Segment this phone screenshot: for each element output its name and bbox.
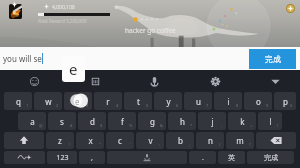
button[interactable]: j [198, 112, 226, 130]
staticText: + [250, 123, 253, 128]
staticText: 1 [26, 103, 29, 108]
staticText: 7 [206, 103, 209, 108]
staticText: v [148, 135, 153, 146]
staticText: u [196, 96, 201, 107]
staticText: 6 [176, 103, 179, 108]
button[interactable]: 完成 [249, 49, 296, 69]
button[interactable]: Space [107, 151, 187, 164]
button[interactable]: s [48, 112, 76, 130]
button[interactable]: b [166, 132, 194, 149]
staticText: 9 [266, 103, 269, 108]
staticText: e [69, 59, 78, 79]
button[interactable]: t [124, 92, 152, 110]
staticText: m [236, 135, 244, 146]
staticText: g [150, 116, 155, 127]
staticText: c [118, 135, 122, 146]
staticText: 完成 [265, 54, 281, 64]
staticText: 5 [146, 103, 149, 108]
button[interactable]: Shift [4, 132, 44, 149]
staticText: w [45, 96, 52, 107]
staticText: q [16, 96, 21, 107]
staticText: . [202, 153, 204, 163]
staticText: l [269, 116, 272, 127]
staticText: p [283, 96, 288, 107]
button[interactable]: k [228, 112, 256, 130]
staticText: ; [189, 142, 191, 147]
button[interactable]: v [136, 132, 164, 149]
button[interactable]: y [154, 92, 182, 110]
staticText: % [129, 123, 133, 128]
staticText: # [70, 123, 73, 128]
staticText: ( [277, 123, 279, 128]
staticText: 3 [86, 103, 89, 108]
staticText: & [160, 123, 163, 128]
button[interactable]: 英 [218, 151, 245, 164]
button[interactable]: e [64, 92, 92, 110]
button[interactable]: x [76, 132, 104, 149]
button[interactable]: u [184, 92, 212, 110]
staticText: i [227, 96, 230, 107]
staticText: you will se [3, 53, 42, 64]
button[interactable]: f [108, 112, 136, 130]
staticText: r [106, 96, 110, 107]
staticText: k [240, 116, 245, 127]
button[interactable]: Profile [9, 4, 22, 19]
button[interactable]: h [168, 112, 196, 130]
button[interactable]: d [78, 112, 106, 130]
button[interactable]: r [94, 92, 122, 110]
button[interactable]: o [244, 92, 272, 110]
staticText: $ [100, 123, 103, 128]
staticText: 英 [228, 153, 235, 162]
staticText: s [60, 116, 64, 127]
staticText: 8 [236, 103, 239, 108]
staticText: 0 [290, 103, 293, 108]
staticText: a [30, 116, 35, 127]
button[interactable]: 123 [47, 151, 77, 164]
staticText: o [256, 96, 261, 107]
staticText: j [211, 116, 214, 127]
button[interactable]: l [258, 112, 282, 130]
button[interactable]: Symbols [4, 151, 45, 164]
button[interactable]: . [189, 151, 216, 164]
staticText: Next Reward 3,200,000 [38, 18, 87, 24]
staticText: f [121, 116, 124, 127]
staticText: 123 [56, 153, 69, 163]
button[interactable]: Backspace [256, 132, 296, 149]
staticText: d [90, 116, 95, 127]
button[interactable]: Emoji [28, 75, 41, 88]
staticText: * [190, 123, 193, 128]
button[interactable]: Settings [209, 75, 222, 88]
staticText: , [91, 153, 93, 163]
staticText: ! [69, 142, 71, 147]
staticText: : [159, 142, 161, 147]
staticText: x [88, 135, 93, 146]
button[interactable]: Voice input [148, 75, 161, 88]
staticText: b [178, 135, 183, 146]
staticText: e [75, 96, 80, 107]
button[interactable]: n [196, 132, 224, 149]
staticText: 2 [56, 103, 59, 108]
button[interactable]: g [138, 112, 166, 130]
button[interactable]: , [79, 151, 105, 164]
button[interactable]: a [18, 112, 46, 130]
button[interactable]: Rewards [286, 4, 295, 13]
button[interactable]: Clipboard [89, 75, 102, 88]
button[interactable]: w [34, 92, 62, 110]
button[interactable]: z [46, 132, 74, 149]
button[interactable]: m [226, 132, 254, 149]
button[interactable]: c [106, 132, 134, 149]
button[interactable]: p [274, 92, 296, 110]
staticText: ' [130, 142, 131, 147]
staticText: / [219, 142, 221, 147]
button[interactable]: i [214, 92, 242, 110]
staticText: 4,000,100 [52, 4, 75, 11]
button[interactable]: q [4, 92, 32, 110]
staticText: @ [39, 123, 43, 128]
button[interactable]: 完成 [247, 151, 294, 164]
staticText: 完成 [264, 153, 278, 162]
button[interactable]: Hide keyboard [269, 75, 282, 88]
staticText: - [221, 123, 223, 128]
staticText: y [166, 96, 171, 107]
staticText: hacker go coffee [125, 26, 176, 35]
staticText: " [99, 142, 101, 147]
